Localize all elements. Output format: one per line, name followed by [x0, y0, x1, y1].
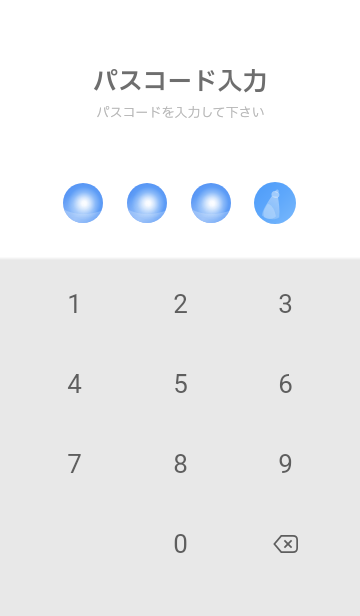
staticText: パスコードを入力して下さい	[96, 103, 265, 122]
staticText: 0	[173, 529, 188, 559]
staticText: 6	[278, 369, 293, 399]
button[interactable]: 5	[127, 344, 233, 424]
button[interactable]: 9	[232, 424, 338, 504]
button[interactable]: 3	[232, 264, 338, 344]
staticText: パスコード入力	[92, 64, 268, 101]
staticText: 2	[173, 289, 188, 319]
staticText: 5	[173, 369, 188, 399]
button[interactable]: 1	[21, 264, 127, 344]
button[interactable]: 8	[127, 424, 233, 504]
button[interactable]: 0	[127, 504, 233, 584]
staticText: 3	[278, 289, 293, 319]
button[interactable]: 4	[21, 344, 127, 424]
staticText: 1	[67, 289, 82, 319]
button[interactable]: 2	[127, 264, 233, 344]
staticText: 4	[67, 369, 82, 399]
staticText: 8	[173, 449, 188, 479]
button[interactable]: 6	[232, 344, 338, 424]
staticText: 7	[67, 449, 82, 479]
button[interactable]: 7	[21, 424, 127, 504]
button[interactable]: Delete	[232, 504, 338, 584]
staticText: 9	[278, 449, 293, 479]
